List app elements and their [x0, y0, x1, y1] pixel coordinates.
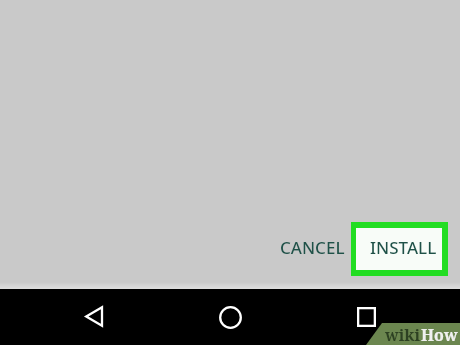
button[interactable]: Back	[76, 298, 112, 334]
staticText: CANCEL	[280, 236, 345, 259]
staticText: INSTALL	[370, 236, 437, 259]
staticText: How	[421, 324, 458, 345]
button[interactable]: CANCEL	[269, 231, 356, 264]
button[interactable]: Recent apps	[348, 299, 384, 335]
button[interactable]: INSTALL	[351, 222, 448, 276]
button[interactable]: Home	[212, 299, 248, 335]
staticText: wiki	[385, 324, 421, 345]
